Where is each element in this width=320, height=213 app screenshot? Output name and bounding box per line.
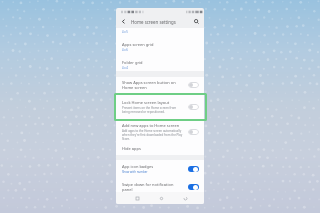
staticText: Apps screen grid [122,42,154,47]
button[interactable]: Hide apps [116,142,204,155]
button[interactable]: Show Apps screen button on Home screen [116,77,204,93]
staticText: Show with number [122,170,148,174]
staticText: Add new apps to Home screen [122,123,180,128]
staticText: 4 x 6 [122,48,128,52]
button[interactable]: Recent apps [133,194,142,203]
button[interactable]: Switch off [188,82,199,88]
button[interactable]: Switch off [188,104,199,110]
staticText: Lock Home screen layout [122,100,170,105]
button[interactable]: Switch off [188,129,199,135]
button[interactable]: Switch on [188,166,199,172]
staticText: Hide apps [122,146,141,151]
button[interactable]: Lock Home screen layout [116,93,204,121]
staticText: Folder grid [122,60,143,65]
staticText: App icon badges [122,164,154,169]
staticText: 4 x 5 [122,30,128,34]
staticText: Show Apps screen button on Home screen [122,80,176,90]
button[interactable]: Add new apps to Home screen [116,121,204,142]
staticText: Add apps to the Home screen automaticall… [122,129,183,141]
staticText: Home screen settings [131,19,176,25]
button[interactable]: Search [192,17,201,26]
staticText: Swipe down for notification panel [122,182,174,192]
button[interactable]: Swipe down for notification panel [116,177,204,196]
staticText: Prevent items on the Home screen from be… [122,106,177,114]
button[interactable]: Switch on [188,184,199,190]
button[interactable]: Navigate up [119,17,128,26]
button[interactable]: Folder grid [116,55,204,73]
button[interactable]: Home [157,194,166,203]
button[interactable]: Back [181,194,190,203]
button[interactable]: Apps screen grid [116,37,204,55]
staticText: 4 x 4 [122,66,128,70]
button[interactable]: App icon badges [116,160,204,177]
